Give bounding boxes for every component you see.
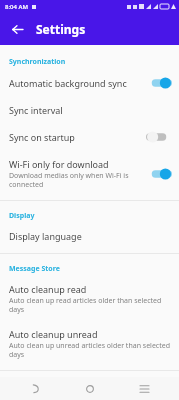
button[interactable]: Auto cleanup read (0, 276, 179, 321)
staticText: Auto cleanup read (9, 283, 87, 295)
button[interactable]: Display language (0, 223, 179, 249)
button[interactable]: Automatic background sync (0, 69, 179, 97)
staticText: Automatic background sync (9, 77, 127, 89)
staticText: Auto clean up unread articles older than… (9, 341, 172, 359)
button[interactable]: Enabled (146, 167, 172, 181)
staticText: Display language (9, 230, 82, 242)
button[interactable]: Wi-Fi only for download (0, 151, 179, 196)
button[interactable]: Back (15, 377, 55, 400)
button[interactable]: Sync interval (0, 97, 179, 123)
staticText: Download medias only when Wi-Fi is conne… (9, 171, 140, 189)
staticText: Message Store (9, 264, 179, 274)
staticText: Display (9, 211, 179, 221)
button[interactable]: Back (7, 19, 27, 39)
staticText: Synchronization (9, 57, 179, 67)
staticText: 8:04 AM (5, 3, 28, 11)
staticText: Auto cleanup unread (9, 328, 98, 340)
staticText: Auto clean up read articles older than s… (9, 296, 172, 314)
button[interactable]: Sync on startup (0, 123, 179, 151)
staticText: Sync on startup (9, 131, 75, 143)
staticText: Wi-Fi only for download (9, 158, 109, 170)
button[interactable]: Home (70, 377, 110, 400)
button[interactable]: Auto cleanup unread (0, 321, 179, 366)
staticText: Sync interval (9, 104, 63, 116)
staticText: Settings (36, 21, 86, 37)
button[interactable]: Disabled (146, 130, 172, 144)
button[interactable]: Enabled (146, 76, 172, 90)
button[interactable]: Recent apps (124, 377, 164, 400)
